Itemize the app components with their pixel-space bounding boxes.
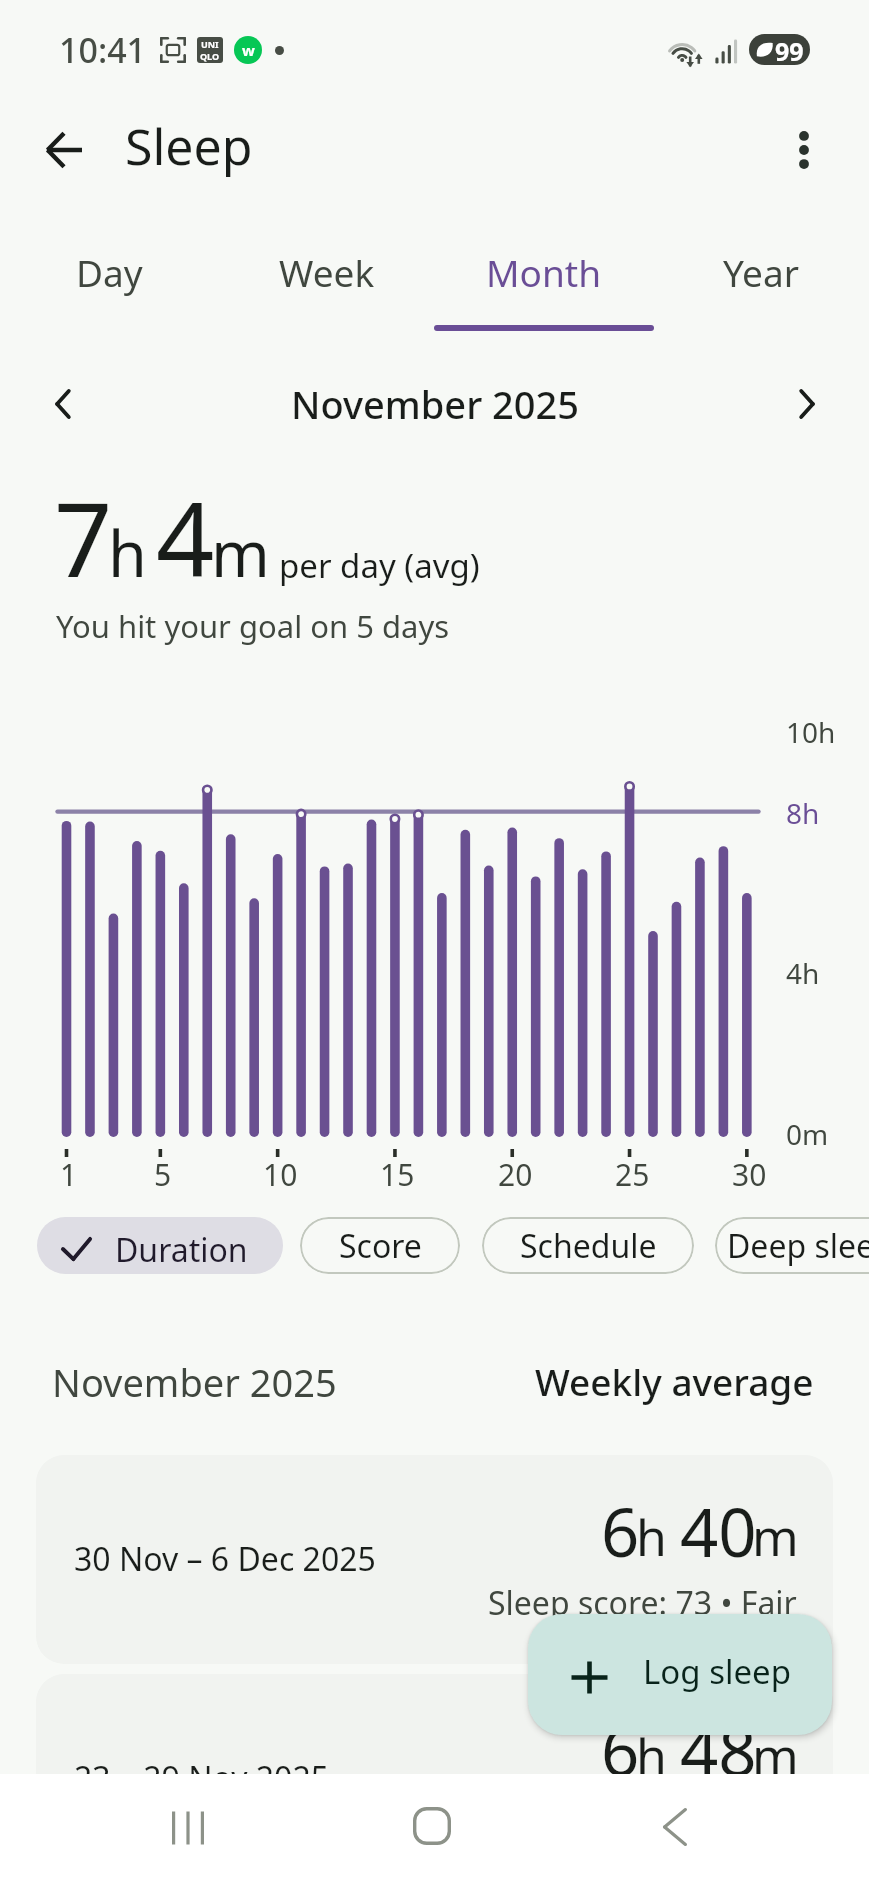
staticText: 0m xyxy=(786,1115,829,1153)
staticText: Year xyxy=(723,247,799,297)
button[interactable]: 30 Nov – 6 Dec 2025 xyxy=(36,1455,833,1664)
button[interactable]: Back xyxy=(639,1791,711,1863)
staticText: h xyxy=(636,1503,667,1571)
staticText: m xyxy=(752,1503,799,1571)
staticText: November 2025 xyxy=(52,1356,337,1408)
button[interactable]: Duration xyxy=(37,1217,283,1274)
staticText: 99 xyxy=(775,34,804,65)
staticText: h xyxy=(636,1722,667,1790)
staticText: UNI xyxy=(201,38,219,50)
staticText: Sleep score: 73 • Fair xyxy=(488,1581,797,1625)
button[interactable]: Next month xyxy=(774,372,838,436)
staticText: 10:41 xyxy=(59,27,147,73)
staticText: Log sleep xyxy=(643,1649,791,1694)
staticText: 30 Nov – 6 Dec 2025 xyxy=(74,1537,376,1581)
button[interactable]: Log sleep xyxy=(528,1614,832,1735)
staticText: Duration xyxy=(115,1228,248,1272)
staticText: 30 xyxy=(732,1154,767,1195)
button[interactable]: Month xyxy=(435,218,652,340)
staticText: Week xyxy=(279,247,375,297)
staticText: 48 xyxy=(680,1704,757,1795)
button[interactable]: Week xyxy=(218,218,435,340)
staticText: 40 xyxy=(680,1485,757,1576)
staticText: You hit your goal on 5 days xyxy=(56,605,450,647)
button[interactable]: Schedule xyxy=(482,1217,694,1274)
staticText: w xyxy=(242,40,255,60)
staticText: 6 xyxy=(601,1704,640,1795)
button[interactable]: Previous month xyxy=(32,372,96,436)
button[interactable]: Day xyxy=(0,218,218,340)
staticText: 15 xyxy=(380,1154,415,1195)
staticText: 7 xyxy=(54,468,113,607)
button[interactable]: Back xyxy=(32,118,96,182)
staticText: Deep sleep xyxy=(727,1224,869,1268)
button[interactable]: Home xyxy=(396,1790,468,1862)
staticText: h xyxy=(108,510,147,596)
staticText: 8h xyxy=(786,794,820,832)
button[interactable]: More options xyxy=(772,118,836,182)
staticText: per day (avg) xyxy=(279,543,480,588)
staticText: m xyxy=(752,1722,799,1790)
button[interactable]: 23 – 29 Nov 2025 xyxy=(36,1674,833,1883)
staticText: Sleep xyxy=(125,112,253,180)
button[interactable]: Deep sleep xyxy=(715,1217,869,1274)
staticText: Day xyxy=(76,247,143,297)
staticText: 10h xyxy=(786,713,836,751)
staticText: 20 xyxy=(498,1154,533,1195)
staticText: m xyxy=(211,510,270,596)
button[interactable]: Recents xyxy=(152,1792,224,1864)
staticText: 23 – 29 Nov 2025 xyxy=(74,1756,330,1800)
button[interactable]: Score xyxy=(300,1217,460,1274)
staticText: QLO xyxy=(200,50,220,62)
staticText: 6 xyxy=(601,1485,640,1576)
staticText: 4h xyxy=(786,954,820,992)
staticText: Weekly average xyxy=(535,1356,814,1406)
staticText: 10 xyxy=(263,1154,298,1195)
staticText: Score xyxy=(339,1224,422,1268)
button[interactable]: Year xyxy=(652,218,869,340)
staticText: 5 xyxy=(154,1154,172,1195)
staticText: Sleep score: 70 • Fair xyxy=(488,1800,797,1844)
staticText: 25 xyxy=(615,1154,650,1195)
staticText: Month xyxy=(486,247,602,297)
staticText: 4 xyxy=(156,468,215,607)
staticText: Schedule xyxy=(520,1224,657,1268)
staticText: 1 xyxy=(60,1154,78,1195)
staticText: November 2025 xyxy=(291,378,580,430)
